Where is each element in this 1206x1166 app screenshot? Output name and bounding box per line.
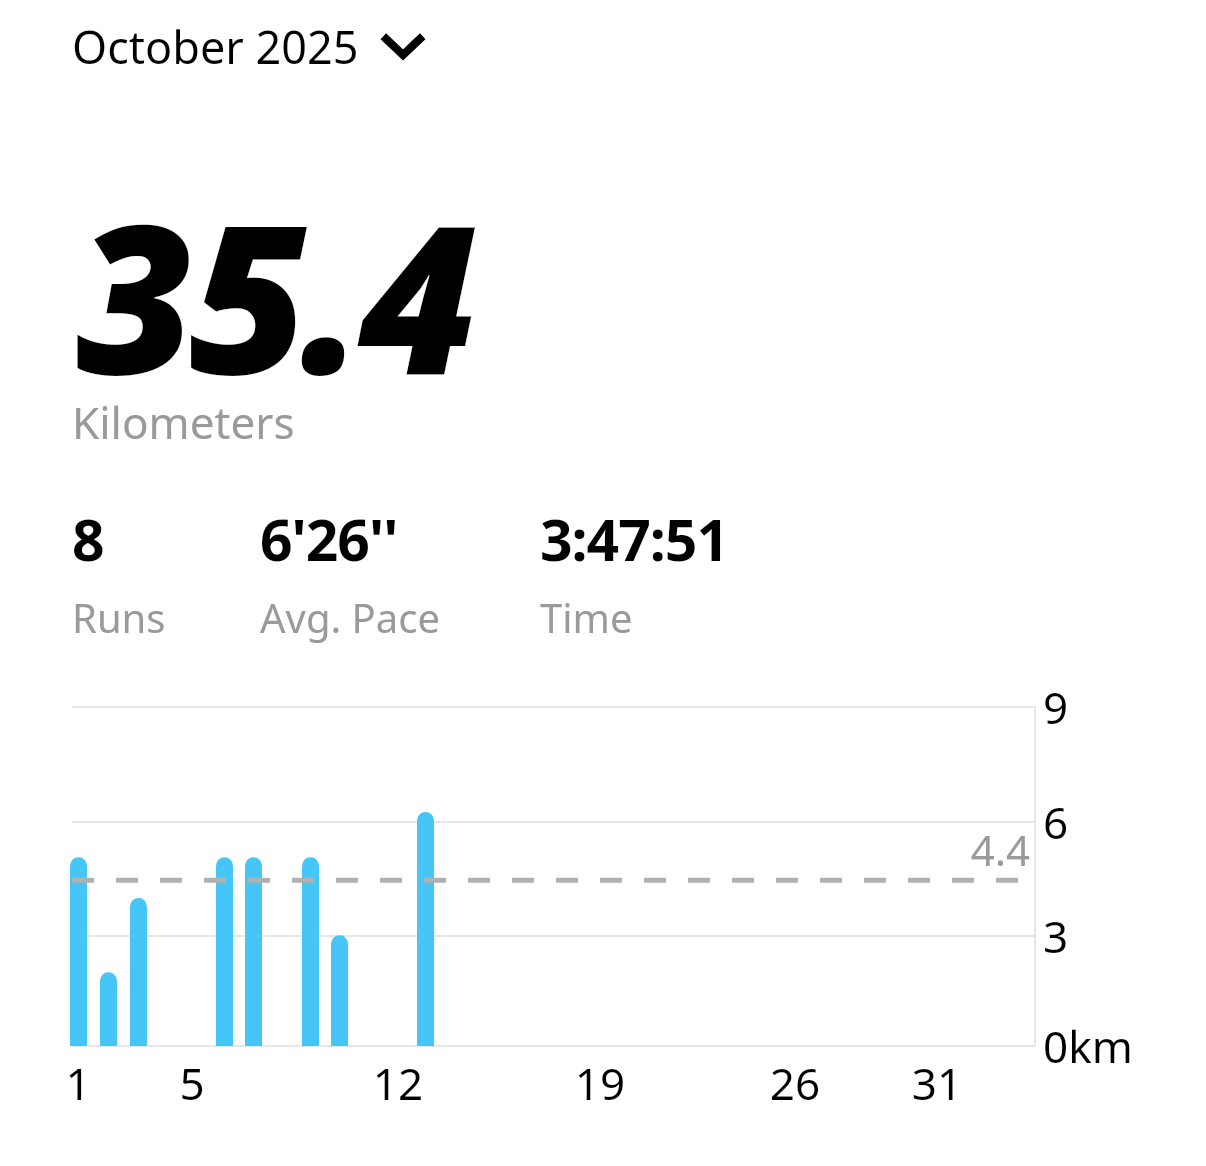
staticText: 1 (38, 1053, 118, 1113)
staticText: 0km (1043, 1016, 1133, 1076)
staticText: October 2025 (72, 16, 359, 77)
staticText: 8 (72, 500, 104, 578)
staticText: Avg. Pace (260, 590, 440, 644)
staticText: Time (540, 590, 633, 644)
staticText: 6 (1043, 792, 1069, 852)
staticText: Kilometers (72, 392, 295, 452)
staticText: 31 (897, 1053, 977, 1113)
staticText: 6'26'' (260, 500, 398, 578)
staticText: 9 (1043, 677, 1069, 737)
button[interactable]: October 2025 (72, 14, 437, 79)
staticText: 35.4 (76, 155, 472, 434)
staticText: 3:47:51 (540, 500, 729, 578)
staticText: 5 (152, 1053, 232, 1113)
staticText: 19 (560, 1053, 640, 1113)
staticText: 3 (1043, 906, 1069, 966)
staticText: 12 (358, 1053, 438, 1113)
staticText: 26 (755, 1053, 835, 1113)
other: Change month (383, 27, 423, 67)
staticText: Runs (72, 590, 166, 644)
staticText: 4.4 (900, 821, 1030, 878)
